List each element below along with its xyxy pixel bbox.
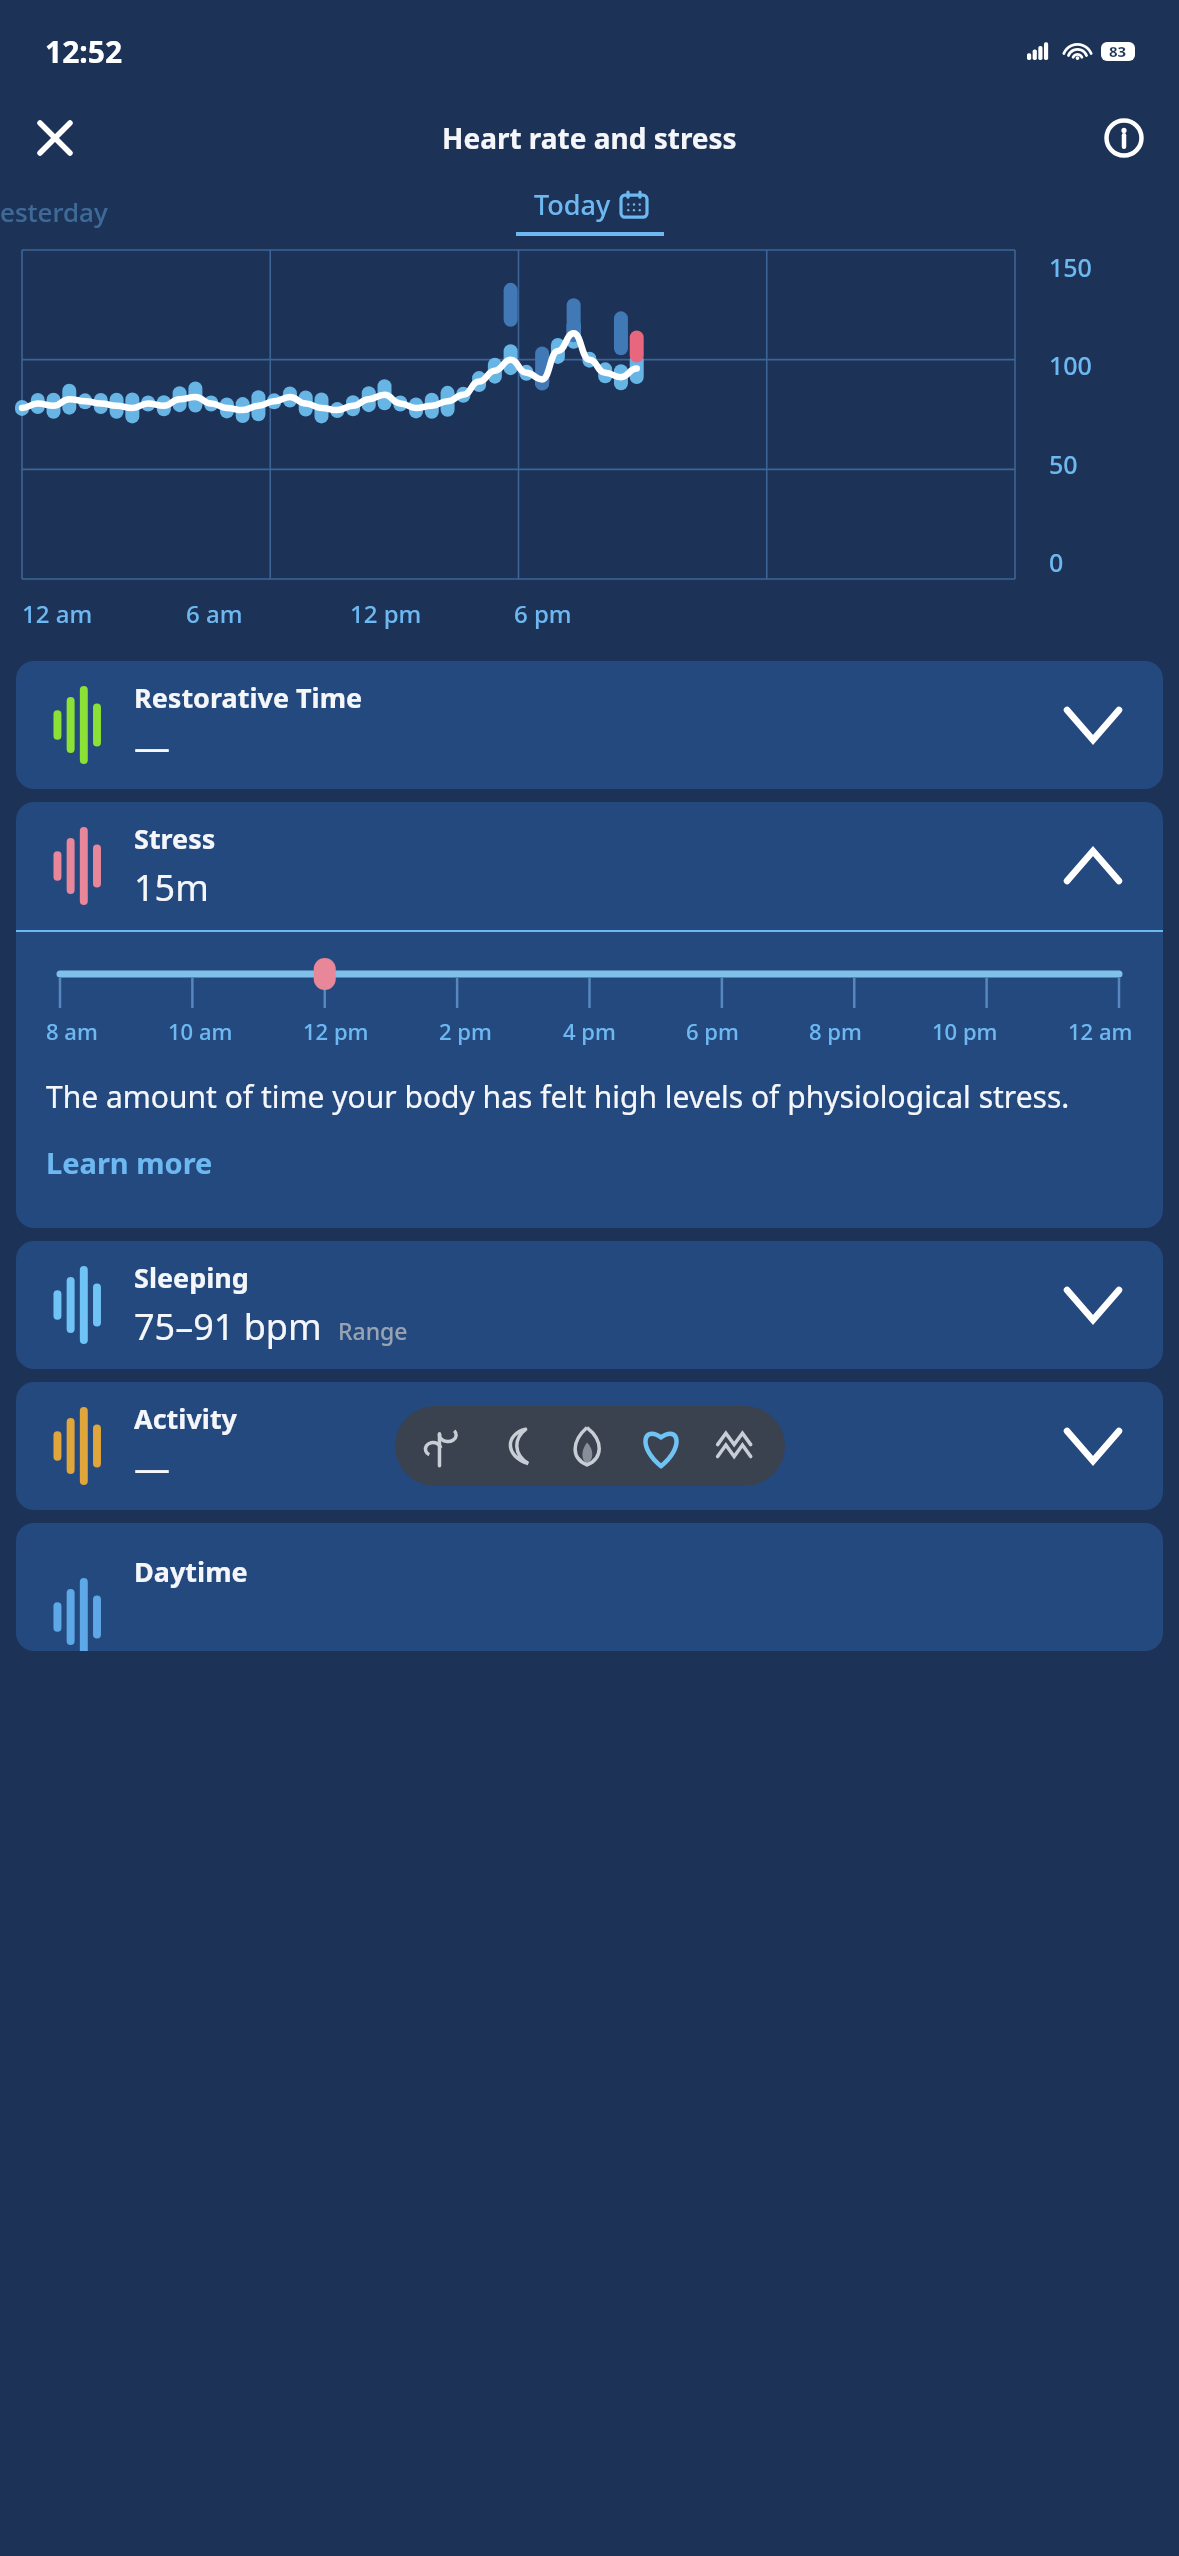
staticText: 6 pm <box>686 1016 739 1046</box>
staticText: Activity <box>134 1400 238 1437</box>
staticText: 10 pm <box>932 1016 998 1046</box>
staticText: — <box>134 1443 171 1492</box>
staticText: 8 am <box>46 1016 98 1046</box>
staticText: 0 <box>1049 545 1064 579</box>
staticText: 100 <box>1049 348 1092 382</box>
staticText: 4 pm <box>563 1016 616 1046</box>
staticText: 12 pm <box>303 1016 369 1046</box>
button[interactable]: Sleeping <box>16 1241 1163 1369</box>
staticText: Sleeping <box>134 1259 249 1296</box>
staticText: Range <box>338 1315 408 1346</box>
staticText: 10 am <box>168 1016 233 1046</box>
staticText: 12 am <box>22 597 93 630</box>
other: Calories <box>565 1424 609 1468</box>
staticText: The amount of time your body has felt hi… <box>46 1076 1070 1117</box>
staticText: — <box>134 722 171 771</box>
staticText: Daytime <box>134 1553 248 1590</box>
button[interactable]: Stress <box>16 802 1163 930</box>
staticText: Restorative Time <box>134 679 363 716</box>
staticText: 2 pm <box>439 1016 492 1046</box>
staticText: Stress <box>134 820 216 857</box>
staticText: 12:52 <box>45 31 123 72</box>
staticText: 75–91 bpm <box>134 1302 322 1351</box>
button[interactable]: Close <box>28 111 82 165</box>
button[interactable]: Activity <box>16 1382 1163 1510</box>
other: HRV <box>713 1423 759 1469</box>
button[interactable]: Today <box>516 186 664 236</box>
button[interactable]: Learn more <box>46 1143 213 1182</box>
staticText: 6 pm <box>514 597 572 630</box>
staticText: 12 am <box>1068 1016 1133 1046</box>
staticText: 8 pm <box>809 1016 862 1046</box>
button[interactable]: esterday <box>0 194 108 229</box>
staticText: 50 <box>1049 447 1078 481</box>
staticText: 83 <box>1109 41 1127 61</box>
staticText: Heart rate and stress <box>442 119 737 157</box>
button[interactable]: Daytime <box>16 1523 1163 1651</box>
button[interactable]: Restorative Time <box>16 661 1163 789</box>
other: Sleep <box>493 1424 537 1468</box>
staticText: 6 am <box>186 597 243 630</box>
other: Heart rate <box>637 1422 685 1470</box>
staticText: 12 pm <box>350 597 422 630</box>
staticText: 15m <box>134 863 209 912</box>
button[interactable]: Info <box>1097 111 1151 165</box>
staticText: 150 <box>1049 250 1092 284</box>
other: Sprout <box>421 1424 465 1468</box>
staticText: Today <box>534 186 611 223</box>
staticText: Learn more <box>46 1143 213 1182</box>
